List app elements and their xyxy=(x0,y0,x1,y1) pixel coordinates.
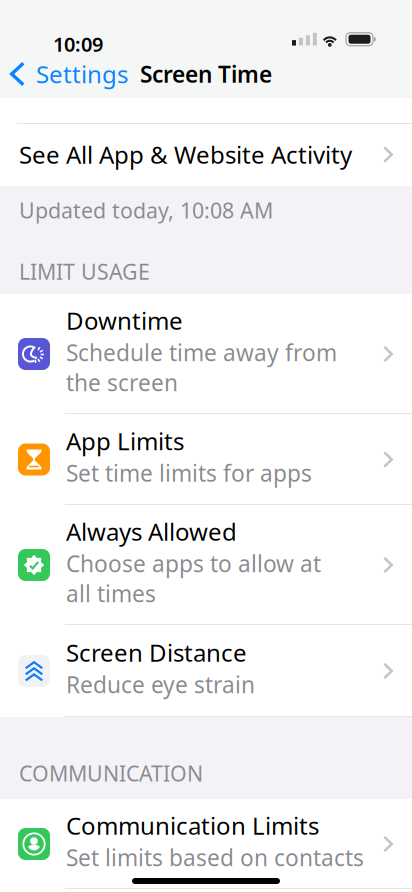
staticText: Screen Distance xyxy=(66,636,247,668)
staticText: Downtime xyxy=(66,304,183,336)
staticText: Updated today, 10:08 AM xyxy=(19,196,273,224)
staticText: Settings xyxy=(36,58,128,90)
button[interactable]: See All App & Website Activity xyxy=(0,123,412,186)
staticText: Always Allowed xyxy=(66,515,237,547)
button[interactable]: Communication Limits xyxy=(0,799,412,889)
staticText: Reduce eye strain xyxy=(66,669,255,699)
staticText: See All App & Website Activity xyxy=(19,139,352,170)
staticText: Communication Limits xyxy=(66,809,319,841)
staticText: COMMUNICATION xyxy=(19,759,203,787)
staticText: LIMIT USAGE xyxy=(19,257,150,286)
staticText: Set time limits for apps xyxy=(66,458,312,488)
button[interactable]: Always Allowed xyxy=(0,505,412,625)
staticText: 10:09 xyxy=(53,31,103,57)
button[interactable]: App Limits xyxy=(0,414,412,505)
staticText: Schedule time away from the screen xyxy=(66,337,337,397)
staticText: Screen Time xyxy=(140,59,272,89)
button[interactable]: Settings xyxy=(0,50,136,98)
button[interactable]: Downtime xyxy=(0,294,412,414)
button[interactable]: Screen Distance xyxy=(0,625,412,717)
staticText: App Limits xyxy=(66,425,184,457)
staticText: Choose apps to allow at all times xyxy=(66,548,321,608)
staticText: Set limits based on contacts xyxy=(66,842,364,872)
